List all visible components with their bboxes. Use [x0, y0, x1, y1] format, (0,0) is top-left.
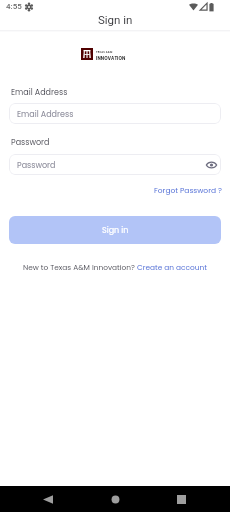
- button[interactable]: Email Address: [9, 103, 221, 124]
- button[interactable]: Back: [33, 486, 62, 512]
- staticText: 4:55: [6, 2, 22, 11]
- button[interactable]: Sign in: [9, 216, 221, 244]
- button[interactable]: Forgot Password ?: [152, 183, 224, 197]
- staticText: INNOVATION: [96, 55, 126, 61]
- staticText: Email Address: [17, 109, 74, 120]
- staticText: Password: [11, 137, 50, 148]
- staticText: Email Address: [11, 87, 68, 98]
- button[interactable]: Password: [9, 154, 221, 175]
- staticText: New to Texas A&M Innovation?: [23, 262, 137, 272]
- button[interactable]: Show password: [204, 157, 219, 172]
- staticText: Forgot Password ?: [154, 185, 222, 195]
- button[interactable]: Home: [100, 486, 130, 512]
- button[interactable]: Recents: [166, 486, 196, 512]
- staticText: Password: [17, 160, 56, 171]
- staticText: TEXAS A&M: [96, 50, 113, 54]
- staticText: Sign in: [98, 13, 133, 26]
- button[interactable]: Create an account: [137, 262, 207, 272]
- staticText: Sign in: [102, 225, 129, 236]
